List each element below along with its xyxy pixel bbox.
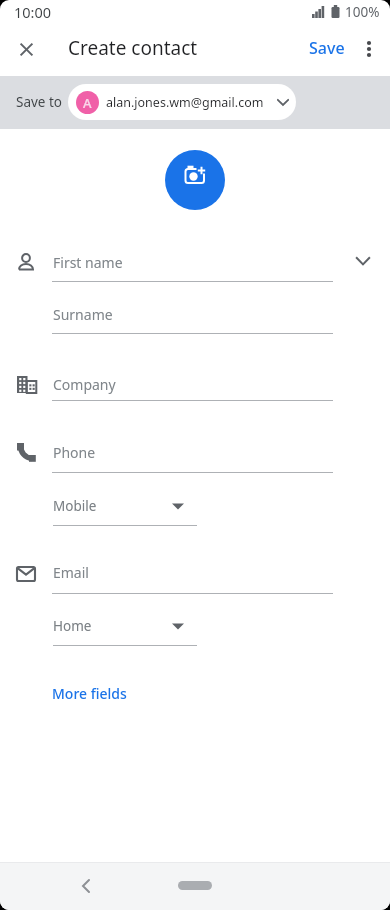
button[interactable]	[62, 862, 110, 910]
staticText: 10:00	[14, 2, 52, 22]
button[interactable]: Home	[52, 610, 198, 644]
staticText: First name	[53, 253, 123, 272]
staticText: Company	[53, 375, 116, 394]
staticText: Phone	[53, 443, 96, 462]
staticText: Home	[53, 617, 92, 635]
staticText: More fields	[52, 684, 127, 703]
button[interactable]	[6, 28, 46, 68]
button[interactable]	[165, 150, 225, 210]
staticText: Email	[53, 563, 89, 582]
staticText: 100%	[345, 3, 380, 21]
button[interactable]: More fields	[40, 676, 140, 710]
staticText: A	[83, 94, 92, 112]
button[interactable]: Mobile	[52, 490, 198, 524]
button[interactable]	[340, 242, 384, 282]
button[interactable]: A	[68, 84, 296, 120]
button[interactable]: Save	[302, 32, 352, 64]
button[interactable]	[178, 881, 212, 890]
button[interactable]	[353, 33, 385, 65]
staticText: Create contact	[68, 35, 198, 61]
staticText: Save	[309, 37, 345, 59]
staticText: Surname	[53, 305, 113, 324]
staticText: Mobile	[53, 497, 97, 515]
staticText: alan.jones.wm@gmail.com	[106, 94, 264, 111]
staticText: Save to	[16, 93, 63, 111]
